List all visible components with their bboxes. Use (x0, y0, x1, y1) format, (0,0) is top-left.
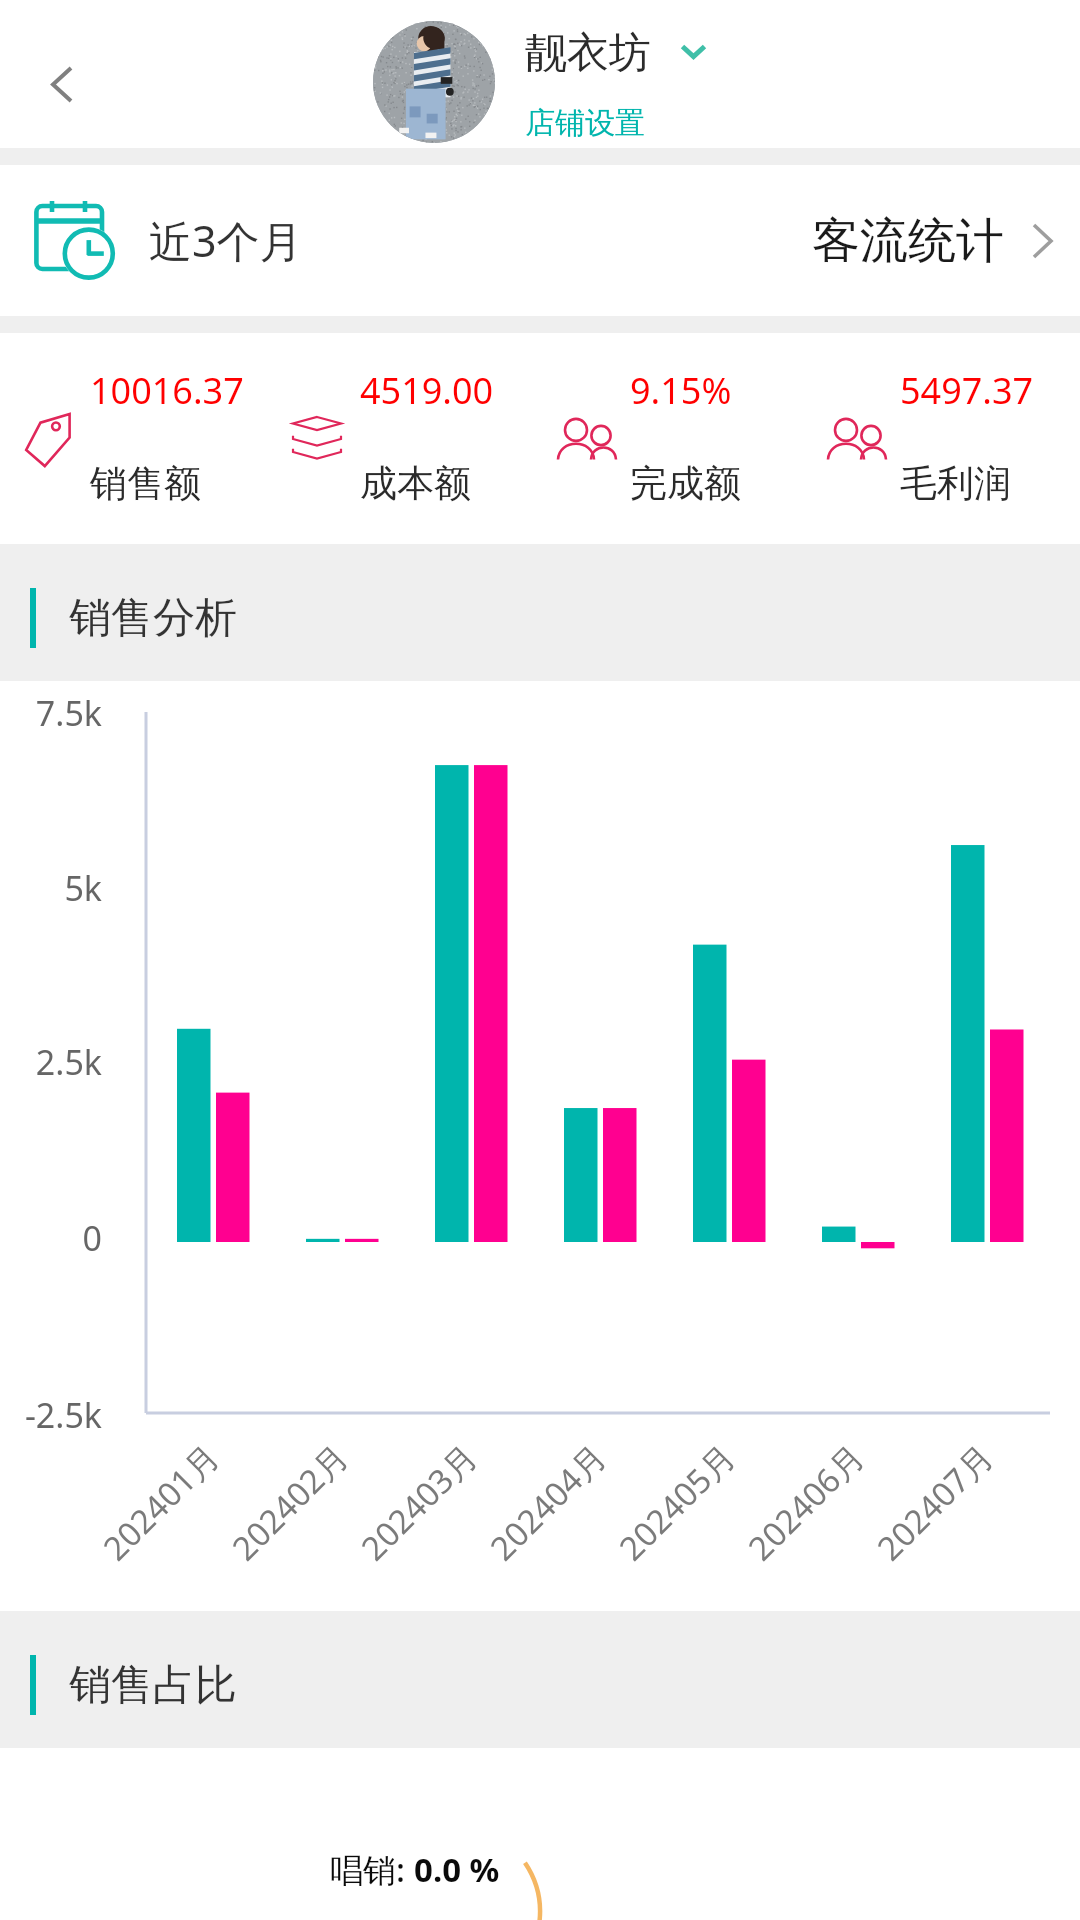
button[interactable]: 客流统计 (812, 165, 1080, 316)
staticText: 唱销: (330, 1847, 414, 1892)
staticText: 销售额 (90, 460, 201, 507)
staticText: 5k (64, 865, 102, 911)
button[interactable]: Back (22, 44, 102, 124)
staticText: 完成额 (630, 460, 741, 507)
staticText: 0.0 % (414, 1847, 500, 1892)
button[interactable]: Switch shop (680, 44, 707, 59)
staticText: 7.5k (35, 690, 102, 736)
button[interactable]: 4519.00 (270, 333, 540, 544)
staticText: 销售分析 (69, 592, 237, 645)
staticText: 10016.37 (90, 366, 244, 415)
staticText: 近3个月 (149, 211, 303, 270)
button[interactable]: 店铺设置 (525, 104, 645, 142)
staticText: 5497.37 (900, 366, 1034, 415)
button[interactable]: 9.15% (540, 333, 810, 544)
staticText: 靓衣坊 (525, 27, 651, 80)
staticText: 客流统计 (812, 211, 1004, 271)
staticText: 2.5k (35, 1039, 102, 1085)
staticText: 0 (82, 1215, 102, 1261)
button[interactable]: 10016.37 (0, 333, 270, 544)
staticText: 4519.00 (360, 366, 494, 415)
staticText: 毛利润 (900, 460, 1011, 507)
button[interactable]: Shop avatar (373, 21, 495, 143)
button[interactable]: 近3个月 (0, 165, 327, 316)
staticText: -2.5k (24, 1392, 102, 1438)
staticText: 销售占比 (69, 1659, 237, 1712)
button[interactable]: 5497.37 (810, 333, 1080, 544)
staticText: 9.15% (630, 366, 732, 415)
staticText: 成本额 (360, 460, 471, 507)
